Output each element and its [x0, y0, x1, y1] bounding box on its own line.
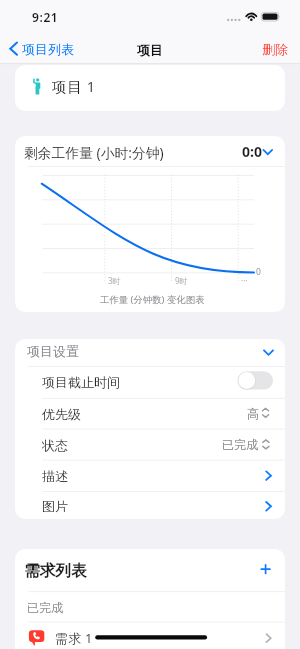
staticText: 需求 1 — [55, 629, 93, 646]
staticText: 0:0 — [242, 142, 262, 161]
button[interactable]: 项目列表 — [6, 37, 81, 61]
staticText: 项目列表 — [22, 41, 74, 57]
staticText: 项目设置 — [27, 343, 79, 359]
staticText: 项目截止时间 — [42, 374, 120, 390]
staticText: 3时 — [108, 275, 121, 286]
button[interactable]: 项目截止时间 — [15, 366, 285, 398]
staticText: 剩余工作量 (小时:分钟) — [24, 143, 164, 162]
staticText: 描述 — [42, 468, 68, 484]
button[interactable]: 状态 — [15, 429, 285, 460]
staticText: 9时 — [175, 275, 188, 286]
staticText: 需求列表 — [24, 561, 87, 581]
button[interactable]: 项目 1 — [15, 65, 285, 111]
staticText: 已完成 — [222, 437, 258, 452]
staticText: 图片 — [42, 498, 68, 514]
staticText: 高 — [247, 406, 259, 421]
staticText: 项目 — [137, 42, 163, 58]
button[interactable]: Add requirement — [254, 558, 278, 582]
staticText: 删除 — [262, 41, 288, 57]
staticText: 优先级 — [42, 406, 81, 422]
staticText: 项目 1 — [52, 76, 96, 96]
button[interactable]: 描述 — [15, 460, 285, 491]
staticText: ··· — [241, 275, 248, 286]
staticText: 9:21 — [32, 9, 59, 25]
button[interactable]: 图片 — [15, 491, 285, 519]
staticText: 已完成 — [27, 600, 63, 615]
staticText: 工作量 (分钟数) 变化图表 — [100, 293, 205, 306]
staticText: 状态 — [42, 437, 68, 453]
button[interactable]: 需求 1 — [15, 622, 285, 649]
staticText: 0 — [256, 266, 261, 278]
button[interactable]: 删除 — [252, 38, 288, 60]
button[interactable]: 项目设置 — [15, 339, 285, 366]
button[interactable]: 优先级 — [15, 398, 285, 429]
